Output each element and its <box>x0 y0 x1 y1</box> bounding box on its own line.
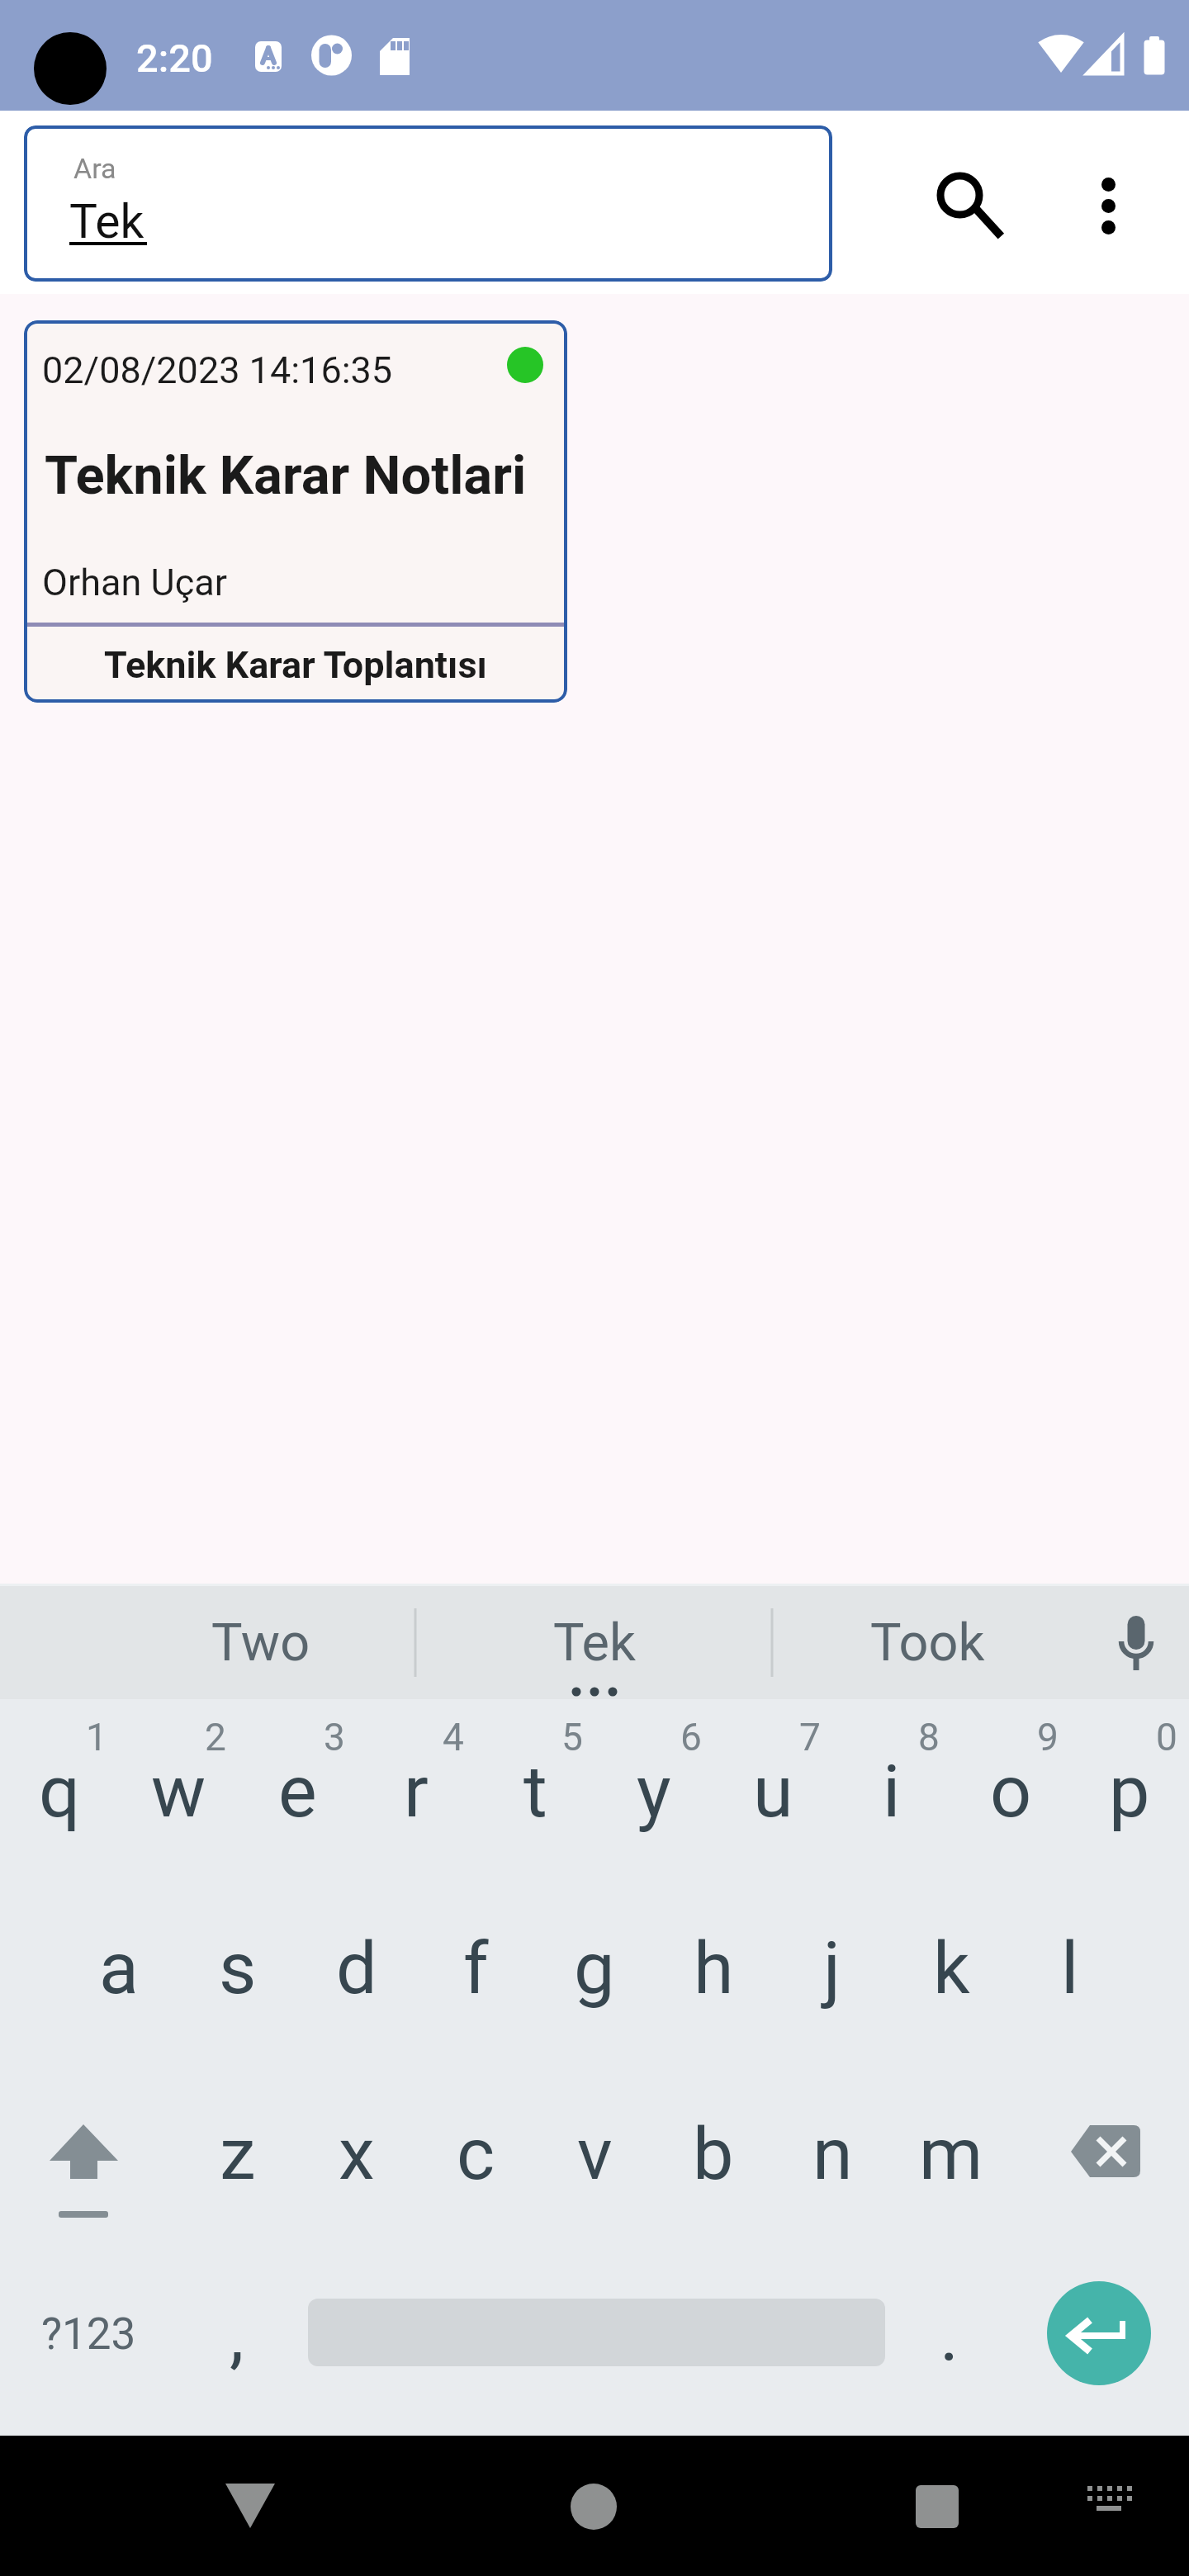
staticText: j <box>823 1925 841 2010</box>
button[interactable]: o <box>924 1712 1097 1869</box>
staticText: n <box>812 2111 853 2196</box>
staticText: 3 <box>324 1715 345 1759</box>
staticText: a <box>99 1925 139 2010</box>
staticText: q <box>39 1749 81 1834</box>
staticText: u <box>753 1749 793 1834</box>
staticText: e <box>278 1749 317 1834</box>
staticText: 0 <box>1156 1715 1177 1759</box>
staticText: Two <box>211 1612 310 1674</box>
button[interactable]: w <box>92 1712 265 1869</box>
staticText: 7 <box>799 1715 821 1759</box>
staticText: h <box>694 1925 734 2010</box>
button[interactable] <box>913 154 1012 253</box>
button[interactable]: n <box>746 2075 919 2232</box>
staticText: Orhan Uçar <box>42 561 227 604</box>
button[interactable] <box>1047 2281 1151 2385</box>
button[interactable]: 8 <box>879 1659 978 1816</box>
button[interactable]: j <box>746 1889 919 2046</box>
button[interactable]: 0 <box>1117 1659 1189 1816</box>
staticText: 2 <box>205 1715 226 1759</box>
button[interactable]: t <box>448 1712 622 1869</box>
button[interactable]: h <box>627 1889 800 2046</box>
button[interactable]: g <box>508 1889 681 2046</box>
staticText: p <box>1109 1749 1150 1834</box>
button[interactable]: u <box>686 1712 860 1869</box>
button[interactable]: y <box>567 1712 741 1869</box>
button[interactable]: ?123 <box>6 2256 171 2413</box>
staticText: c <box>457 2111 495 2196</box>
button[interactable]: q <box>0 1712 146 1869</box>
button[interactable]: a <box>32 1889 206 2046</box>
staticText: , <box>230 2292 244 2377</box>
button[interactable]: 6 <box>642 1659 741 1816</box>
button[interactable]: f <box>389 1889 562 2046</box>
staticText: 4 <box>443 1715 464 1759</box>
button[interactable]: Ara <box>24 125 832 282</box>
staticText: Tek <box>69 194 144 249</box>
button[interactable]: s <box>151 1889 324 2046</box>
staticText: 9 <box>1037 1715 1059 1759</box>
button[interactable]: d <box>270 1889 443 2046</box>
button[interactable]: 3 <box>285 1659 384 1816</box>
button[interactable]: e <box>211 1712 384 1869</box>
staticText: d <box>336 1925 377 2010</box>
button[interactable] <box>26 2073 144 2230</box>
button[interactable]: l <box>983 1889 1157 2046</box>
staticText: f <box>463 1925 489 2010</box>
button[interactable]: v <box>508 2075 681 2232</box>
button[interactable]: 9 <box>998 1659 1097 1816</box>
button[interactable]: r <box>329 1712 503 1869</box>
button[interactable]: m <box>865 2075 1038 2232</box>
button[interactable] <box>192 2448 308 2564</box>
staticText: v <box>577 2111 613 2196</box>
staticText: z <box>220 2111 256 2196</box>
staticText: g <box>574 1925 615 2010</box>
button[interactable]: , <box>154 2256 320 2413</box>
button[interactable] <box>536 2448 651 2564</box>
button[interactable]: 2 <box>166 1659 265 1816</box>
staticText: o <box>990 1749 1032 1834</box>
button[interactable] <box>1049 2448 1165 2564</box>
staticText: . <box>940 2292 959 2377</box>
button[interactable]: Took <box>841 1592 1014 1694</box>
button[interactable]: . <box>867 2256 1032 2413</box>
staticText: Took <box>870 1612 985 1674</box>
button[interactable]: k <box>865 1889 1038 2046</box>
staticText: x <box>339 2111 375 2196</box>
button[interactable] <box>1045 2073 1164 2230</box>
button[interactable]: 02/08/2023 14:16:35 <box>24 320 567 703</box>
staticText: b <box>693 2111 734 2196</box>
staticText: 2:20 <box>136 36 213 81</box>
button[interactable]: 4 <box>404 1659 503 1816</box>
staticText: 02/08/2023 14:16:35 <box>42 348 393 392</box>
button[interactable]: b <box>627 2075 800 2232</box>
staticText: Tek <box>553 1612 636 1674</box>
staticText: y <box>637 1749 671 1834</box>
button[interactable]: 7 <box>760 1659 860 1816</box>
staticText: l <box>1061 1925 1079 2010</box>
staticText: k <box>933 1925 970 2010</box>
staticText: 6 <box>680 1715 702 1759</box>
button[interactable]: i <box>805 1712 978 1869</box>
button[interactable]: x <box>270 2075 443 2232</box>
staticText: Teknik Karar Notlari <box>45 444 527 507</box>
staticText: s <box>219 1925 257 2010</box>
staticText: w <box>151 1749 206 1834</box>
button[interactable]: p <box>1043 1712 1189 1869</box>
staticText: Teknik Karar Toplantısı <box>104 643 487 687</box>
button[interactable]: 1 <box>47 1659 146 1816</box>
staticText: m <box>919 2111 983 2196</box>
staticText: 1 <box>86 1715 107 1759</box>
staticText: i <box>883 1749 901 1834</box>
button[interactable]: Tek <box>508 1592 681 1694</box>
button[interactable] <box>1059 158 1158 257</box>
button[interactable]: Two <box>174 1592 348 1694</box>
button[interactable]: 5 <box>523 1659 622 1816</box>
button[interactable] <box>879 2448 995 2564</box>
button[interactable]: c <box>389 2075 562 2232</box>
staticText: Ara <box>73 152 116 185</box>
staticText: t <box>523 1749 547 1834</box>
staticText: 5 <box>561 1715 583 1759</box>
button[interactable]: z <box>151 2075 324 2232</box>
